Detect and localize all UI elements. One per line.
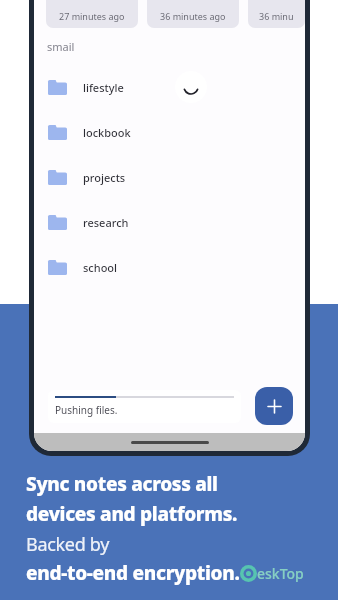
button[interactable]: 27 minutes ago <box>46 0 138 28</box>
staticText: devices and platforms. <box>26 501 238 527</box>
staticText: smail <box>47 39 75 54</box>
staticText: research <box>83 215 129 230</box>
staticText: end-to-end encryption. <box>26 560 240 586</box>
staticText: projects <box>83 170 126 185</box>
button[interactable]: 36 minutes ago <box>147 0 239 28</box>
button[interactable]: 36 minu <box>248 0 305 28</box>
button[interactable]: lifestyle <box>34 65 305 110</box>
staticText: school <box>83 260 118 275</box>
staticText: lifestyle <box>83 80 124 95</box>
staticText: lockbook <box>83 125 131 140</box>
button[interactable]: Pushing files. <box>48 390 241 423</box>
staticText: eskTop <box>257 564 304 583</box>
staticText: Pushing files. <box>55 403 118 417</box>
button[interactable]: projects <box>34 155 305 200</box>
staticText: Backed by <box>26 532 110 557</box>
button[interactable]: Create new note <box>255 387 293 425</box>
button[interactable]: lockbook <box>34 110 305 155</box>
staticText: Sync notes across all <box>26 471 218 497</box>
button[interactable]: research <box>34 200 305 245</box>
staticText: 36 minutes ago <box>160 10 226 22</box>
staticText: 36 minu <box>259 10 294 22</box>
staticText: 27 minutes ago <box>59 10 125 22</box>
button[interactable]: school <box>34 245 305 290</box>
